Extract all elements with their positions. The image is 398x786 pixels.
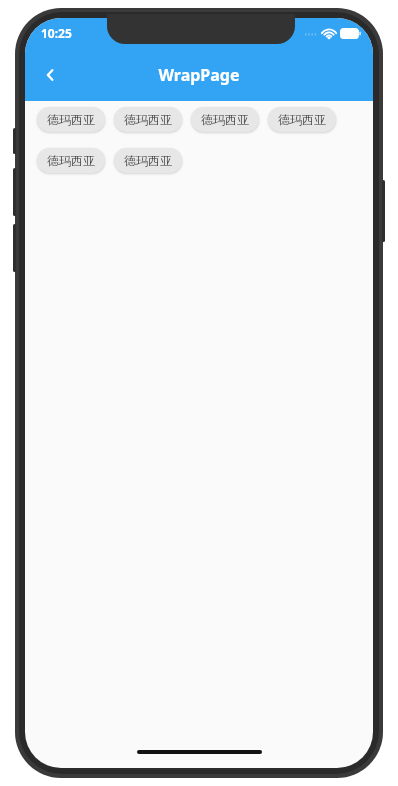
staticText: 德玛西亚 [124,112,172,127]
button[interactable]: Back [31,55,71,95]
button[interactable]: 德玛西亚 [114,148,182,173]
staticText: WrapPage [158,64,240,86]
button[interactable]: 德玛西亚 [114,107,182,132]
staticText: 德玛西亚 [201,112,249,127]
button[interactable]: 德玛西亚 [37,148,105,173]
staticText: 德玛西亚 [278,112,326,127]
staticText: 10:25 [41,25,72,41]
button[interactable]: 德玛西亚 [37,107,105,132]
button[interactable]: 德玛西亚 [191,107,259,132]
button[interactable]: 德玛西亚 [268,107,336,132]
staticText: 德玛西亚 [47,112,95,127]
staticText: 德玛西亚 [124,153,172,168]
staticText: 德玛西亚 [47,153,95,168]
